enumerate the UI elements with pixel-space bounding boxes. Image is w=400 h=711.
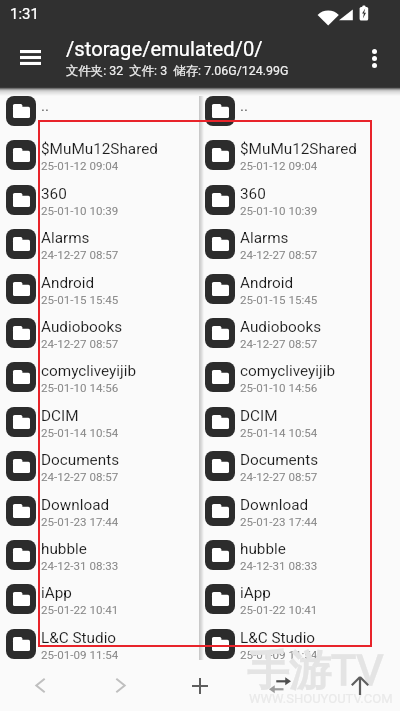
staticText: 25-01-10 10:39 xyxy=(41,204,119,218)
staticText: 24-12-27 08:57 xyxy=(41,248,119,262)
button[interactable]: hubble xyxy=(0,533,199,577)
button[interactable]: New xyxy=(160,660,240,711)
staticText: 24-12-27 08:57 xyxy=(41,337,119,351)
staticText: comycliveyijib xyxy=(240,362,335,380)
staticText: $MuMu12Shared xyxy=(41,140,158,158)
staticText: comycliveyijib xyxy=(41,362,136,380)
staticText: iApp xyxy=(41,584,72,602)
button[interactable]: Audiobooks xyxy=(199,311,400,355)
staticText: hubble xyxy=(41,540,87,558)
staticText: 25-01-10 14:56 xyxy=(240,381,318,395)
staticText: Download xyxy=(41,496,110,514)
staticText: .. xyxy=(240,97,249,115)
staticText: 24-12-27 08:57 xyxy=(41,470,119,484)
staticText: 文件夹: 32 文件: 3 储存: 7.06G/124.99G xyxy=(66,63,289,79)
staticText: Android xyxy=(41,274,95,292)
button[interactable]: .. xyxy=(199,89,400,133)
staticText: 360 xyxy=(41,185,67,203)
staticText: 25-01-09 11:54 xyxy=(41,648,119,662)
button[interactable]: Forward xyxy=(80,660,160,711)
staticText: Audiobooks xyxy=(41,318,123,336)
staticText: 25-01-14 10:54 xyxy=(41,426,119,440)
staticText: Alarms xyxy=(41,229,90,247)
staticText: 25-01-12 09:04 xyxy=(240,159,318,173)
staticText: 25-01-10 14:56 xyxy=(41,381,119,395)
staticText: 1:31 xyxy=(10,5,39,23)
staticText: 25-01-10 10:39 xyxy=(240,204,318,218)
staticText: DCIM xyxy=(41,407,79,425)
staticText: 25-01-23 17:44 xyxy=(240,515,318,529)
button[interactable]: Android xyxy=(199,267,400,311)
staticText: .. xyxy=(41,97,50,115)
button[interactable]: Menu xyxy=(0,28,60,88)
button[interactable]: Documents xyxy=(0,444,199,488)
button[interactable]: L&C Studio xyxy=(0,622,199,666)
button[interactable]: 360 xyxy=(199,178,400,222)
button[interactable]: DCIM xyxy=(199,400,400,444)
staticText: 25-01-23 17:44 xyxy=(41,515,119,529)
staticText: hubble xyxy=(240,540,286,558)
button[interactable]: Alarms xyxy=(199,222,400,266)
staticText: 24-12-27 08:57 xyxy=(240,248,318,262)
staticText: Android xyxy=(240,274,294,292)
button[interactable]: .. xyxy=(0,89,199,133)
staticText: WWW.SHOUYOUTV.COM xyxy=(249,691,393,706)
staticText: Documents xyxy=(41,451,120,469)
button[interactable]: Download xyxy=(0,489,199,533)
button[interactable]: Up one level xyxy=(320,660,400,711)
staticText: 25-01-12 09:04 xyxy=(41,159,119,173)
button[interactable]: Documents xyxy=(199,444,400,488)
button[interactable]: 360 xyxy=(0,178,199,222)
staticText: Audiobooks xyxy=(240,318,322,336)
button[interactable]: L&C Studio xyxy=(199,622,400,666)
button[interactable]: Swap panes xyxy=(240,660,320,711)
staticText: DCIM xyxy=(240,407,278,425)
button[interactable]: iApp xyxy=(0,577,199,621)
staticText: 25-01-22 10:41 xyxy=(41,603,119,617)
staticText: Alarms xyxy=(240,229,289,247)
staticText: L&C Studio xyxy=(240,629,316,647)
staticText: 25-01-14 10:54 xyxy=(240,426,318,440)
staticText: 25-01-15 15:45 xyxy=(240,293,318,307)
button[interactable]: $MuMu12Shared xyxy=(0,133,199,177)
button[interactable]: hubble xyxy=(199,533,400,577)
button[interactable]: comycliveyijib xyxy=(0,355,199,399)
staticText: 25-01-09 11:54 xyxy=(240,648,318,662)
button[interactable]: More options xyxy=(340,28,400,88)
button[interactable]: Back xyxy=(0,660,80,711)
staticText: 24-12-27 08:57 xyxy=(240,470,318,484)
button[interactable]: Android xyxy=(0,267,199,311)
staticText: Download xyxy=(240,496,309,514)
staticText: 24-12-31 08:33 xyxy=(240,559,318,573)
staticText: 25-01-15 15:45 xyxy=(41,293,119,307)
button[interactable]: Alarms xyxy=(0,222,199,266)
staticText: 手游TV xyxy=(247,645,384,696)
staticText: 24-12-31 08:33 xyxy=(41,559,119,573)
staticText: 24-12-27 08:57 xyxy=(240,337,318,351)
staticText: 360 xyxy=(240,185,266,203)
staticText: 25-01-22 10:41 xyxy=(240,603,318,617)
button[interactable]: comycliveyijib xyxy=(199,355,400,399)
button[interactable]: iApp xyxy=(199,577,400,621)
button[interactable]: DCIM xyxy=(0,400,199,444)
button[interactable]: Download xyxy=(199,489,400,533)
staticText: iApp xyxy=(240,584,271,602)
staticText: $MuMu12Shared xyxy=(240,140,357,158)
staticText: L&C Studio xyxy=(41,629,117,647)
staticText: Documents xyxy=(240,451,319,469)
staticText: /storage/emulated/0/ xyxy=(66,37,263,61)
button[interactable]: $MuMu12Shared xyxy=(199,133,400,177)
button[interactable]: Audiobooks xyxy=(0,311,199,355)
